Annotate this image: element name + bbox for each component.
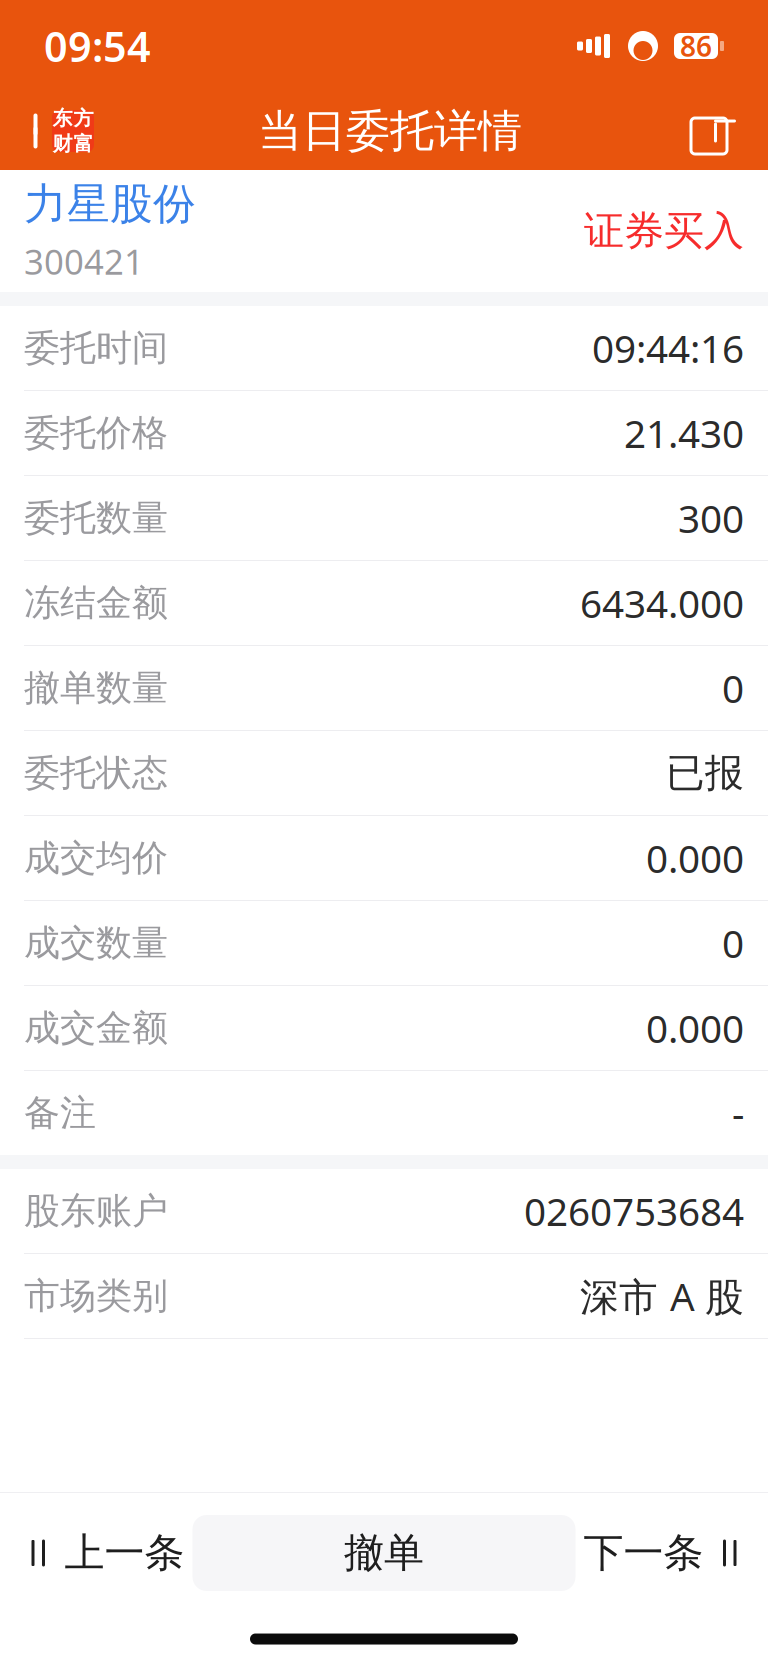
staticText: 富 <box>73 131 93 156</box>
staticText: 已报 <box>666 749 744 797</box>
staticText: 撤单数量 <box>24 666 168 710</box>
button[interactable]: 分享 <box>686 103 768 159</box>
staticText: 300 <box>678 492 744 544</box>
staticText: 0 <box>722 662 744 714</box>
button[interactable]: 返回 <box>0 100 94 162</box>
staticText: 09:54 <box>44 19 151 73</box>
button[interactable]: 撤单 <box>192 1515 575 1591</box>
staticText: 当日委托详情 <box>258 104 522 158</box>
staticText: 0.000 <box>646 1002 744 1054</box>
staticText: 力星股份 <box>24 178 196 230</box>
staticText: 86 <box>680 27 712 65</box>
staticText: 下一条 <box>583 1528 703 1577</box>
staticText: 证券买入 <box>584 206 744 255</box>
staticText: 0260753684 <box>524 1185 744 1237</box>
staticText: 成交金额 <box>24 1006 168 1050</box>
staticText: 6434.000 <box>580 577 744 629</box>
staticText: 成交均价 <box>24 836 168 880</box>
staticText: 委托状态 <box>24 751 168 795</box>
staticText: 委托价格 <box>24 411 168 455</box>
staticText: 方 <box>73 106 93 130</box>
staticText: 0.000 <box>646 832 744 884</box>
staticText: 市场类别 <box>24 1274 168 1318</box>
staticText: 股东账户 <box>24 1189 168 1233</box>
staticText: 上一条 <box>64 1528 184 1577</box>
staticText: 冻结金额 <box>24 581 168 625</box>
staticText: 21.430 <box>624 407 744 459</box>
staticText: 深市 A 股 <box>580 1270 744 1322</box>
staticText: 0 <box>722 917 744 969</box>
staticText: 财 <box>52 131 72 156</box>
staticText: 撤单 <box>344 1528 424 1577</box>
staticText: 委托时间 <box>24 326 168 370</box>
staticText: 09:44:16 <box>592 322 744 374</box>
staticText: 300421 <box>24 238 144 284</box>
staticText: 委托数量 <box>24 496 168 540</box>
staticText: 东 <box>52 106 72 130</box>
staticText: 备注 <box>24 1091 96 1135</box>
staticText: 成交数量 <box>24 921 168 965</box>
button[interactable]: 下一条 <box>583 1506 768 1599</box>
button[interactable]: 上一条 <box>0 1506 184 1599</box>
staticText: - <box>732 1087 744 1139</box>
